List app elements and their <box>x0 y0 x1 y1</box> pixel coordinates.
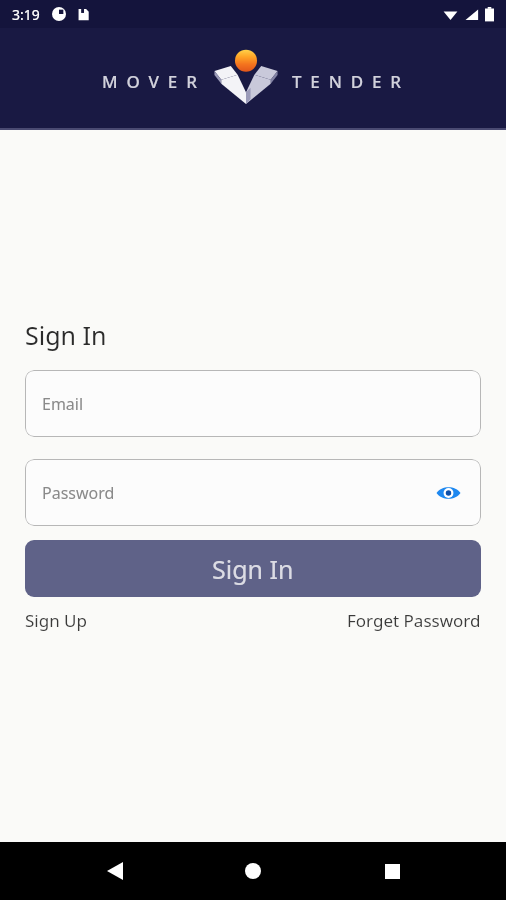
button[interactable]: Email <box>25 370 481 437</box>
staticText: Email <box>42 393 84 415</box>
staticText: Password <box>42 482 115 504</box>
staticText: T E N D E R <box>292 70 404 93</box>
button[interactable]: Forget Password <box>347 607 481 634</box>
button[interactable]: Password <box>25 459 481 526</box>
button[interactable]: Back <box>91 847 139 895</box>
staticText: Sign In <box>25 318 107 352</box>
button[interactable]: Home <box>229 847 277 895</box>
staticText: 3:19 <box>12 5 40 24</box>
button[interactable]: Sign In <box>25 540 481 597</box>
button[interactable]: Show password <box>432 477 464 509</box>
staticText: Sign In <box>212 552 294 586</box>
staticText: Sign Up <box>25 609 87 632</box>
button[interactable]: Recent apps <box>368 847 416 895</box>
button[interactable]: Sign Up <box>25 607 87 634</box>
staticText: M O V E R <box>102 70 200 93</box>
staticText: Forget Password <box>347 609 481 632</box>
